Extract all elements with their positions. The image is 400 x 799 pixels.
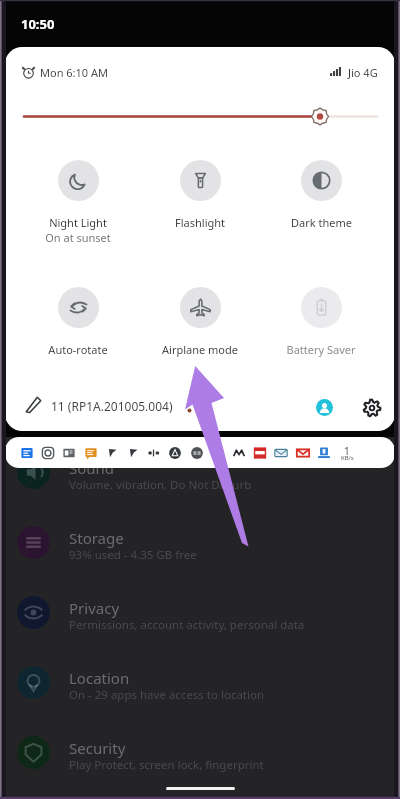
button[interactable]: Flashlight [140, 156, 260, 230]
staticText: Sound [69, 458, 115, 478]
staticText: Jio 4G [348, 65, 378, 80]
staticText: Battery Saver [286, 342, 356, 357]
button[interactable]: Settings [363, 399, 381, 417]
button[interactable]: Sound [0, 437, 400, 507]
staticText: Airplane mode [162, 342, 238, 357]
staticText: Permissions, account activity, personal … [69, 617, 305, 633]
staticText: Night Light [49, 215, 107, 230]
staticText: Storage [69, 528, 124, 548]
button[interactable]: Security [0, 717, 400, 787]
button[interactable]: Dark theme [261, 156, 381, 230]
button[interactable]: Night Light [18, 156, 138, 245]
button[interactable]: User account [316, 399, 333, 416]
button[interactable]: Privacy [0, 577, 400, 647]
staticText: Play Protect, screen lock, fingerprint [69, 757, 264, 773]
staticText: 93% used - 4.35 GB free [69, 547, 197, 563]
button[interactable]: Storage [0, 507, 400, 577]
staticText: Location [69, 668, 130, 688]
staticText: Security [69, 738, 126, 758]
staticText: On at sunset [45, 230, 111, 245]
staticText: Mon 6:10 AM [40, 65, 108, 80]
button[interactable]: Edit [24, 395, 43, 414]
button[interactable]: Auto-rotate [18, 283, 138, 357]
staticText: Volume, vibration, Do Not Disturb [69, 477, 252, 493]
staticText: 10:50 [21, 15, 55, 33]
staticText: Auto-rotate [48, 342, 108, 357]
staticText: 1 [344, 444, 350, 458]
button[interactable]: Airplane mode [140, 283, 260, 357]
button[interactable]: Battery Saver [261, 283, 381, 357]
staticText: Dark theme [291, 215, 352, 230]
staticText: Privacy [69, 598, 120, 618]
staticText: KB/s [341, 454, 354, 462]
staticText: On - 29 apps have access to location [69, 687, 265, 703]
staticText: Flashlight [175, 215, 225, 230]
button[interactable]: Location [0, 647, 400, 717]
staticText: 11 (RP1A.201005.004) [51, 398, 173, 414]
